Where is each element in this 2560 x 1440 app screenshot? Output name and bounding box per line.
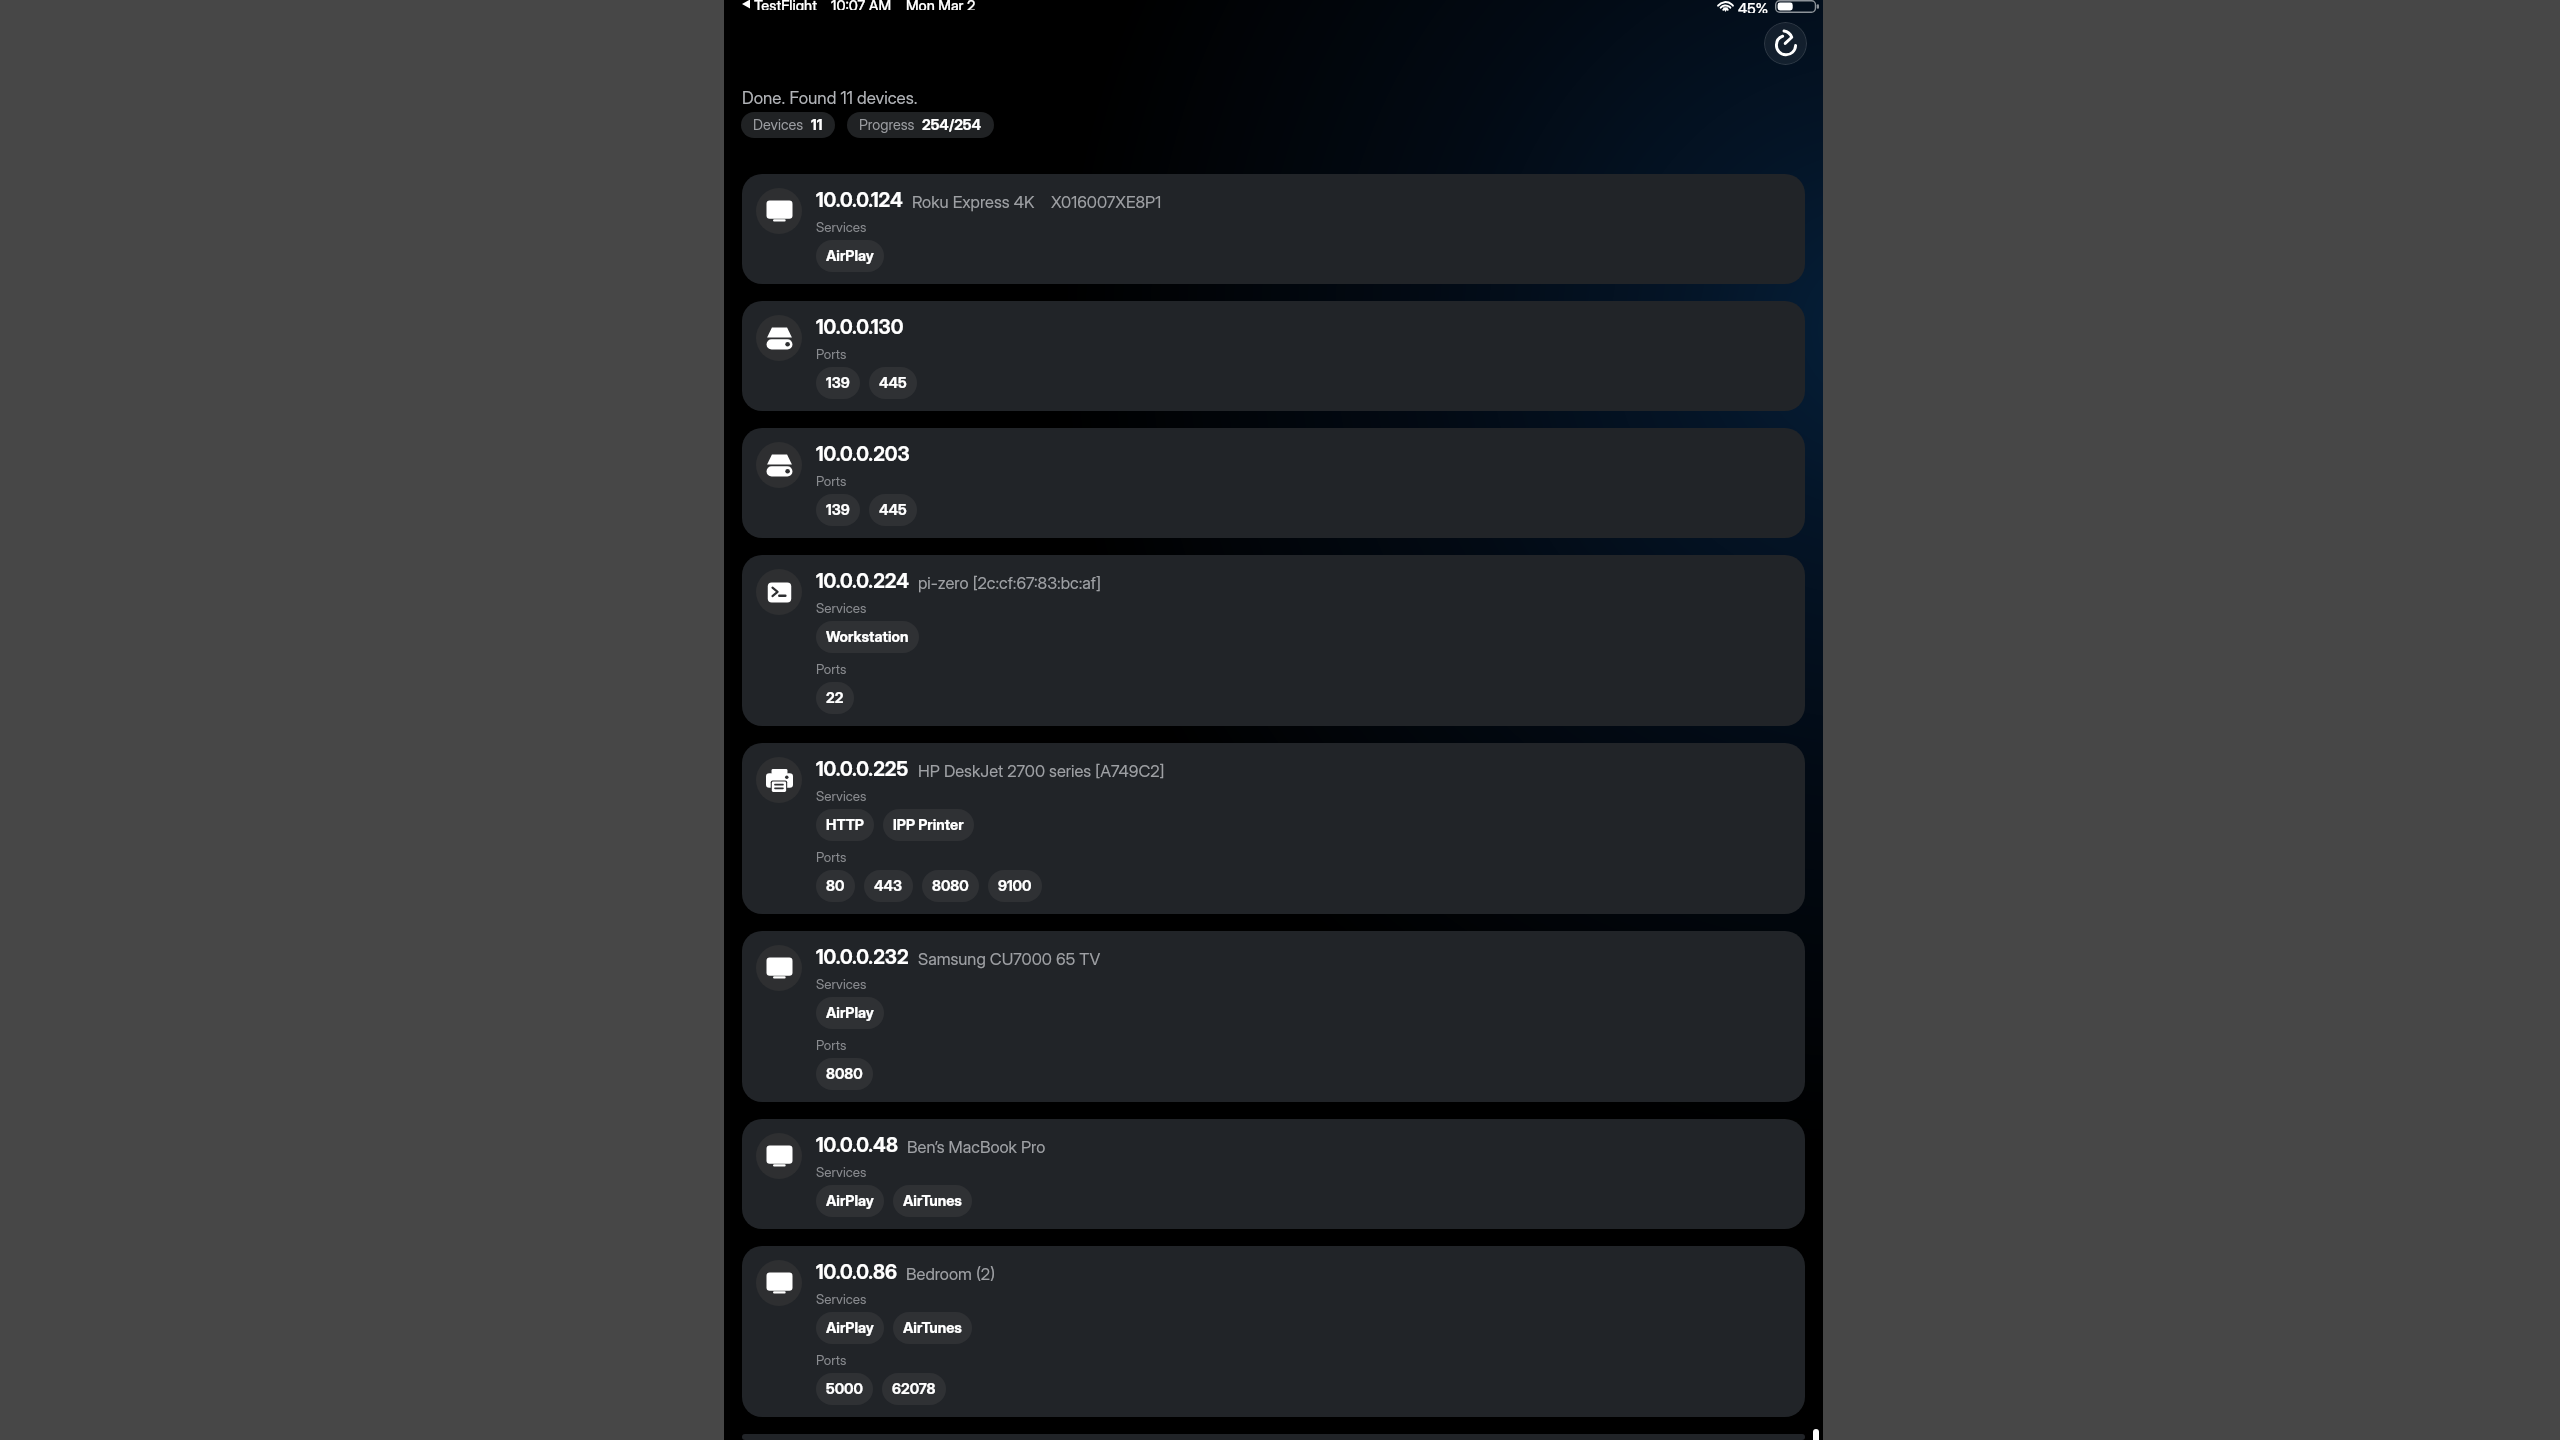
button[interactable]: IPP Printer xyxy=(883,809,974,841)
button[interactable]: 10.0.0.48 xyxy=(742,1119,1805,1229)
staticText: Roku Express 4K xyxy=(912,192,1035,212)
button[interactable]: 10.0.0.224 xyxy=(742,555,1805,726)
staticText: AirPlay xyxy=(826,1004,874,1022)
staticText: 62078 xyxy=(892,1380,936,1398)
staticText: Workstation xyxy=(826,628,909,646)
staticText: 8080 xyxy=(932,877,969,895)
staticText: Ports xyxy=(816,473,847,489)
staticText: Bedroom (2) xyxy=(906,1264,996,1284)
staticText: Devices xyxy=(753,116,804,134)
button[interactable]: HTTP xyxy=(816,809,874,841)
staticText: Services xyxy=(816,1164,867,1180)
staticText: AirTunes xyxy=(903,1192,962,1210)
button[interactable]: Progress xyxy=(847,112,994,138)
staticText: 10.0.0.48 xyxy=(816,1133,898,1157)
button[interactable]: 10.0.0.130 xyxy=(742,301,1805,411)
button[interactable]: 10.0.0.124 xyxy=(742,174,1805,284)
staticText: Ports xyxy=(816,849,847,865)
button[interactable]: 10.0.0.225 xyxy=(742,743,1805,914)
button[interactable]: AirPlay xyxy=(816,240,884,272)
staticText: 10.0.0.224 xyxy=(816,569,909,593)
staticText: 8080 xyxy=(826,1065,863,1083)
staticText: Progress xyxy=(859,116,915,134)
staticText: HP DeskJet 2700 series [A749C2] xyxy=(918,761,1165,781)
staticText: AirTunes xyxy=(903,1319,962,1337)
staticText: AirPlay xyxy=(826,247,874,265)
button[interactable]: 443 xyxy=(864,870,913,902)
staticText: 45% xyxy=(1738,0,1769,13)
staticText: Ports xyxy=(816,1352,847,1368)
staticText: Ports xyxy=(816,661,847,677)
staticText: 445 xyxy=(879,501,907,519)
staticText: Services xyxy=(816,600,867,616)
staticText: 9100 xyxy=(998,877,1032,895)
staticText: Ports xyxy=(816,1037,847,1053)
button[interactable]: 10.0.0.203 xyxy=(742,428,1805,538)
staticText: AirPlay xyxy=(826,1192,874,1210)
staticText: 80 xyxy=(826,877,845,895)
staticText: 445 xyxy=(879,374,907,392)
staticText: Services xyxy=(816,219,867,235)
staticText: pi-zero [2c:cf:67:83:bc:af] xyxy=(918,573,1101,593)
staticText: 22 xyxy=(826,689,844,707)
staticText: Samsung CU7000 65 TV xyxy=(918,949,1101,969)
button[interactable]: 8080 xyxy=(816,1058,873,1090)
button[interactable]: 445 xyxy=(869,494,917,526)
staticText: Services xyxy=(816,788,867,804)
button[interactable]: 22 xyxy=(816,682,854,714)
staticText: Done. Found 11 devices. xyxy=(742,88,918,109)
staticText: Services xyxy=(816,1291,867,1307)
button[interactable]: 10.0.0.232 xyxy=(742,931,1805,1102)
staticText: Ben’s MacBook Pro xyxy=(907,1137,1046,1157)
staticText: Mon Mar 2 xyxy=(906,0,976,10)
staticText: 10.0.0.203 xyxy=(816,442,910,466)
button[interactable]: 139 xyxy=(816,367,860,399)
staticText: 10.0.0.124 xyxy=(816,188,903,212)
button[interactable]: 9100 xyxy=(988,870,1042,902)
button[interactable]: 80 xyxy=(816,870,855,902)
staticText: 139 xyxy=(826,501,850,519)
staticText: Services xyxy=(816,976,867,992)
button[interactable]: 8080 xyxy=(922,870,979,902)
button[interactable]: 62078 xyxy=(882,1373,946,1405)
button[interactable]: AirPlay xyxy=(816,997,884,1029)
button[interactable]: AirTunes xyxy=(893,1312,972,1344)
staticText: 11 xyxy=(811,116,823,134)
button[interactable]: 139 xyxy=(816,494,860,526)
staticText: 5000 xyxy=(826,1380,863,1398)
staticText: X016007XE8P1 xyxy=(1051,192,1162,212)
button[interactable]: 10.0.0.86 xyxy=(742,1246,1805,1417)
button[interactable]: AirPlay xyxy=(816,1312,884,1344)
staticText: HTTP xyxy=(826,816,864,834)
button[interactable]: Devices xyxy=(741,112,835,138)
staticText: AirPlay xyxy=(826,1319,874,1337)
staticText: 139 xyxy=(826,374,850,392)
staticText: IPP Printer xyxy=(893,816,964,834)
button[interactable]: Workstation xyxy=(816,621,919,653)
staticText: 254/254 xyxy=(922,116,982,134)
button[interactable]: AirTunes xyxy=(893,1185,972,1217)
staticText: 10.0.0.86 xyxy=(816,1260,897,1284)
staticText: 10.0.0.130 xyxy=(816,315,904,339)
staticText: 443 xyxy=(874,877,903,895)
staticText: Ports xyxy=(816,346,847,362)
button[interactable]: 5000 xyxy=(816,1373,873,1405)
button[interactable]: Refresh xyxy=(1764,22,1807,65)
button[interactable]: AirPlay xyxy=(816,1185,884,1217)
staticText: TestFlight xyxy=(754,0,817,10)
staticText: 10.0.0.225 xyxy=(816,757,909,781)
staticText: 10.0.0.232 xyxy=(816,945,909,969)
button[interactable]: 445 xyxy=(869,367,917,399)
staticText: 10:07 AM xyxy=(831,0,892,10)
